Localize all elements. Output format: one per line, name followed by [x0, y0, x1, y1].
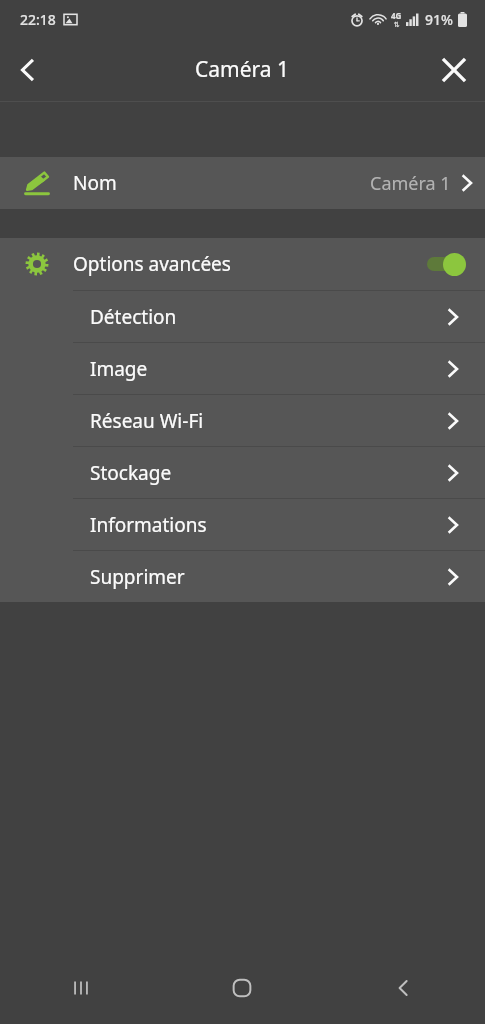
button[interactable]: Close [423, 39, 485, 101]
button[interactable]: Options avancées [0, 238, 485, 290]
button[interactable]: Informations [0, 499, 485, 550]
staticText: 91% [425, 10, 453, 29]
button[interactable]: Image [0, 343, 485, 394]
button[interactable]: Recent apps [0, 952, 161, 1024]
button[interactable]: Nom [0, 157, 485, 209]
staticText: 22:18 [20, 10, 56, 29]
button[interactable]: Toggle advanced options [423, 250, 467, 278]
staticText: Image [90, 356, 148, 382]
staticText: ⇅ [394, 21, 400, 29]
button[interactable]: Back [323, 952, 485, 1024]
staticText: Caméra 1 [195, 55, 290, 84]
staticText: Nom [73, 170, 117, 196]
button[interactable]: Home [161, 952, 323, 1024]
button[interactable]: Détection [0, 291, 485, 342]
staticText: Options avancées [73, 251, 231, 277]
button[interactable]: Stockage [0, 447, 485, 498]
button[interactable]: Back [0, 42, 56, 98]
staticText: Caméra 1 [370, 171, 451, 196]
staticText: Détection [90, 304, 177, 330]
button[interactable]: Réseau Wi-Fi [0, 395, 485, 446]
staticText: Réseau Wi-Fi [90, 408, 204, 434]
button[interactable]: Supprimer [0, 551, 485, 602]
staticText: Supprimer [90, 564, 185, 590]
staticText: 4G [391, 10, 402, 21]
staticText: Informations [90, 512, 207, 538]
staticText: Stockage [90, 460, 172, 486]
